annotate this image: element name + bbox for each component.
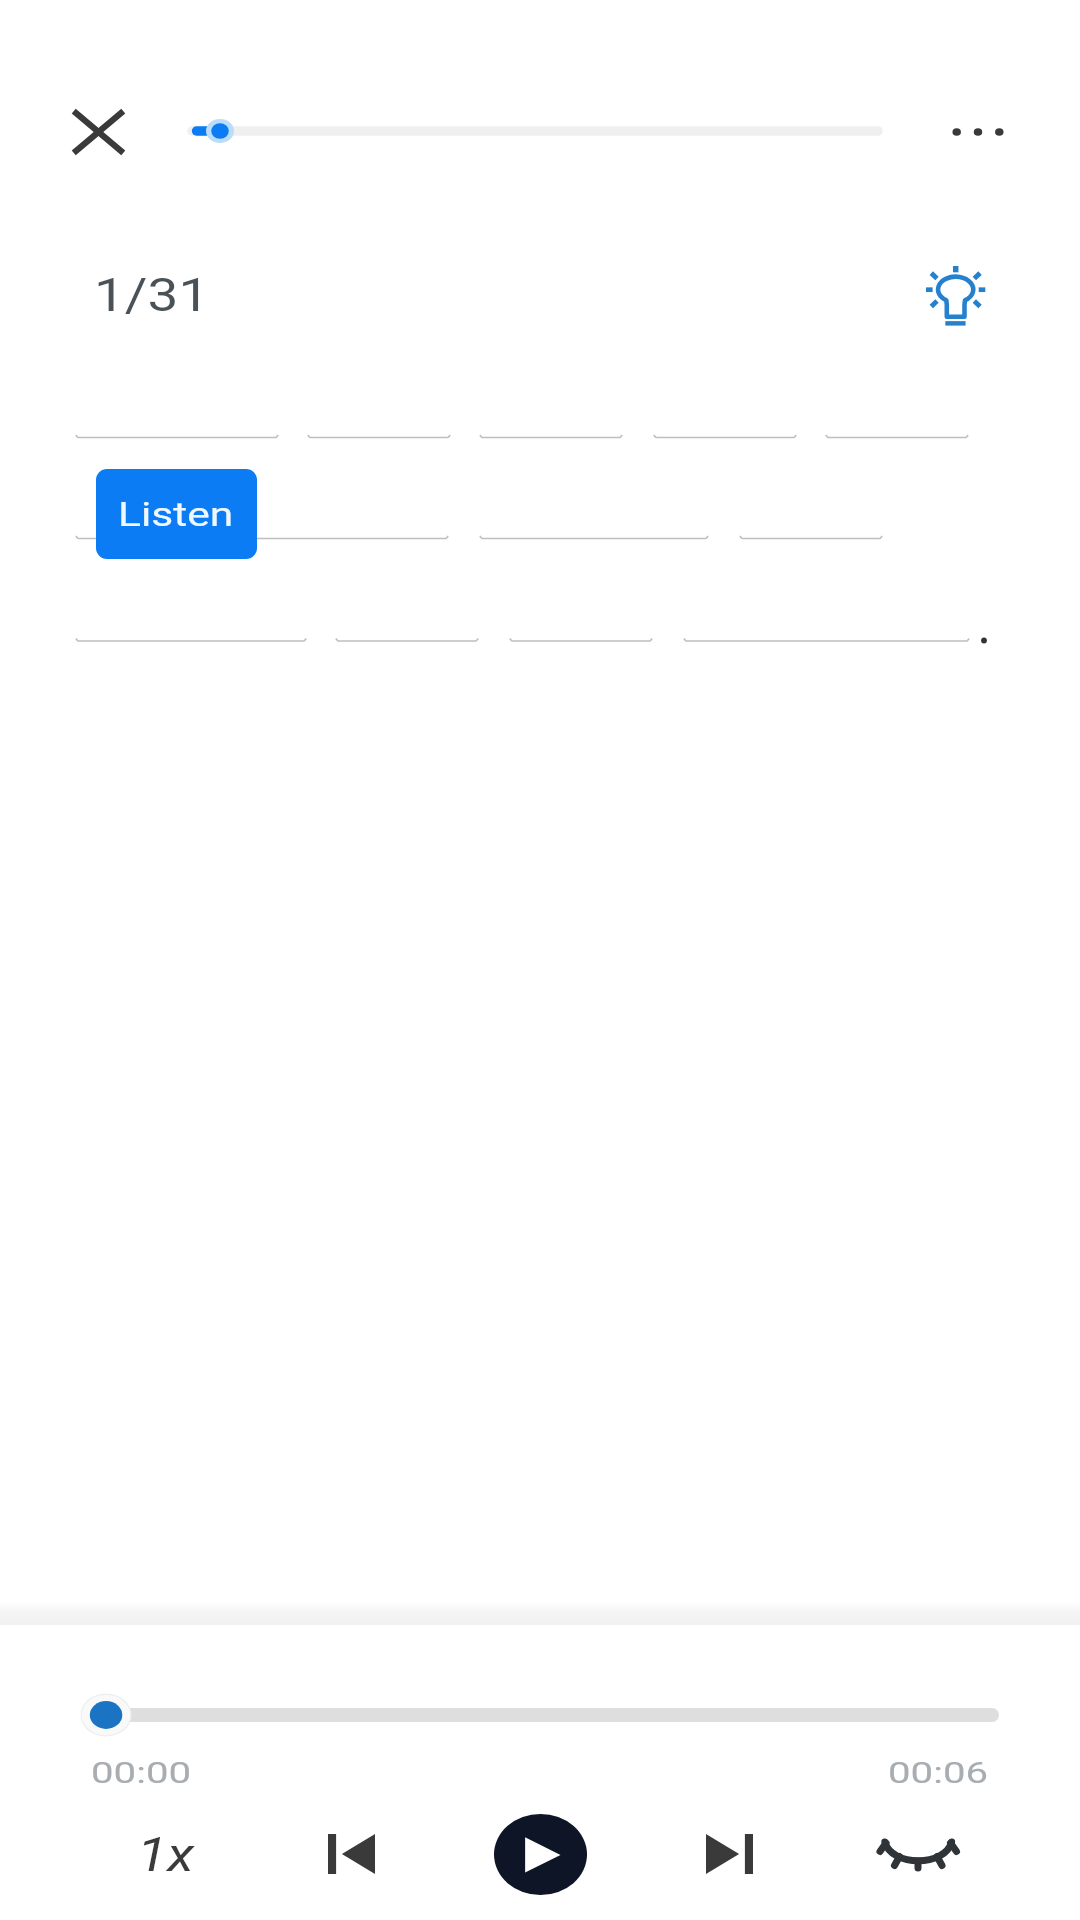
- button[interactable]: Close: [43, 76, 154, 187]
- button[interactable]: More options: [922, 76, 1033, 187]
- staticText: 1x: [137, 1826, 195, 1882]
- staticText: 1/31: [94, 267, 210, 322]
- button[interactable]: Listen: [96, 469, 257, 559]
- button[interactable]: Previous: [296, 1799, 406, 1909]
- staticText: 00:06: [888, 1755, 988, 1790]
- button[interactable]: Next: [674, 1799, 784, 1909]
- button[interactable]: Hide text: [864, 1800, 974, 1910]
- button[interactable]: Seek: [60, 1680, 1020, 1750]
- button[interactable]: Play: [485, 1799, 596, 1910]
- button[interactable]: 1x: [107, 1799, 217, 1909]
- button[interactable]: Lesson progress: [160, 100, 910, 162]
- button[interactable]: Hint: [900, 240, 1010, 350]
- staticText: Listen: [118, 495, 234, 534]
- staticText: 00:00: [91, 1755, 191, 1790]
